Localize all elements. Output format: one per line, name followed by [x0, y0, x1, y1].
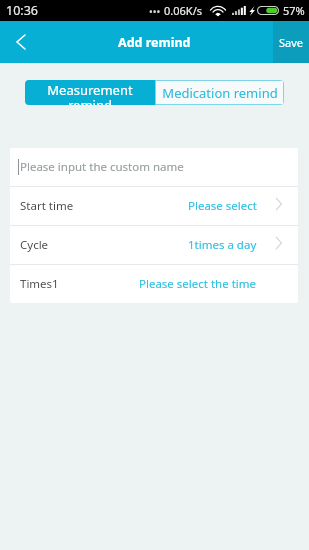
- staticText: Save: [279, 35, 304, 50]
- button[interactable]: Cycle: [10, 226, 298, 264]
- staticText: Add remind: [118, 34, 191, 51]
- staticText: Measurement remind: [25, 81, 155, 105]
- button[interactable]: Please input the custom name: [10, 148, 298, 186]
- button[interactable]: Save: [273, 21, 309, 63]
- staticText: 10:36: [6, 2, 38, 19]
- staticText: 57%: [283, 3, 305, 18]
- staticText: Start time: [20, 198, 74, 214]
- staticText: Please select: [188, 198, 257, 214]
- button[interactable]: Measurement remind: [25, 80, 155, 105]
- button[interactable]: Back: [0, 21, 42, 63]
- staticText: Times1: [20, 276, 59, 292]
- staticText: Medication remind: [162, 84, 278, 102]
- button[interactable]: Start time: [10, 187, 298, 225]
- button[interactable]: Medication remind: [155, 80, 284, 105]
- staticText: Please input the custom name: [20, 159, 184, 175]
- staticText: Please select the time: [139, 276, 257, 292]
- staticText: 0.06K/s: [164, 3, 202, 18]
- staticText: •••: [149, 5, 161, 19]
- staticText: 1times a day: [188, 237, 257, 253]
- button[interactable]: Times1: [10, 265, 298, 303]
- staticText: Cycle: [20, 237, 49, 253]
